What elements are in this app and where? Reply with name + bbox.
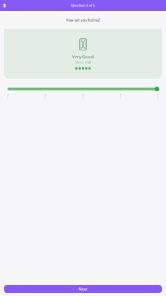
staticText: Next [78, 286, 87, 291]
staticText: 5 [157, 96, 159, 100]
staticText: 1 [7, 96, 9, 100]
staticText: How are you feeling? [65, 17, 100, 23]
staticText: 4 [119, 96, 121, 100]
staticText: Question 3 of 5 [71, 3, 95, 8]
staticText: Feeling Great [75, 61, 91, 64]
staticText: 2 [44, 96, 46, 100]
staticText: Very Good [72, 54, 94, 59]
button[interactable]: Back [0, 0, 9, 11]
staticText: 3 [82, 96, 84, 100]
button[interactable]: Next [4, 285, 162, 293]
